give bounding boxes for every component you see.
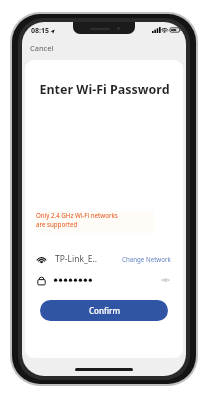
staticText: Cancel	[30, 43, 54, 53]
button[interactable]: Confirm	[40, 300, 168, 321]
staticText: Change Network	[122, 255, 171, 263]
staticText: Only 2.4 GHz Wi-Fi networks are supporte…	[36, 211, 118, 229]
button[interactable]: Cancel	[26, 41, 58, 55]
staticText: TP-Link_E..	[55, 253, 98, 265]
staticText: Confirm	[89, 305, 120, 316]
staticText: 08:15	[31, 26, 49, 36]
button[interactable]: TP-Link_E..	[25, 249, 183, 269]
button[interactable]: Change Network	[120, 253, 173, 265]
staticText: Enter Wi-Fi Password	[39, 81, 170, 98]
button[interactable]: Show password	[159, 275, 172, 285]
